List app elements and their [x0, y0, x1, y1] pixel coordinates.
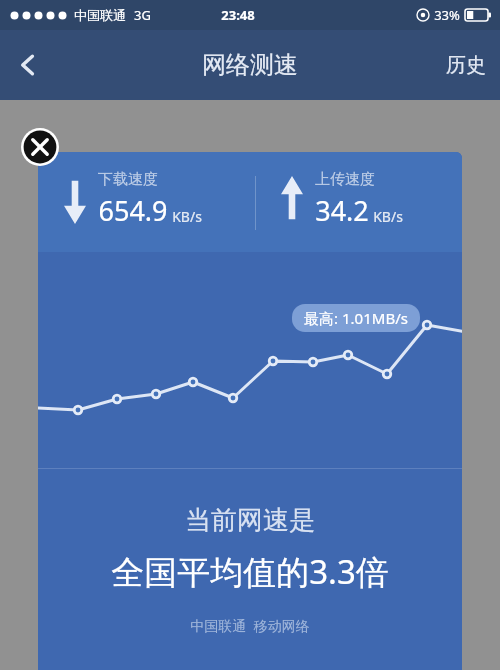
button[interactable]: Back: [0, 37, 56, 93]
staticText: 历史: [446, 53, 486, 78]
staticText: 网络测速: [202, 50, 298, 80]
staticText: 23:48: [221, 6, 255, 24]
staticText: 中国联通: [74, 7, 126, 23]
staticText: 最高: 1.01MB/s: [304, 308, 408, 328]
staticText: 33%: [434, 6, 460, 24]
staticText: 3G: [134, 6, 151, 24]
staticText: 中国联通 移动网络: [190, 616, 310, 635]
staticText: 654.9: [98, 192, 168, 229]
button[interactable]: 历史: [432, 43, 500, 88]
staticText: 上传速度: [315, 170, 375, 189]
staticText: 全国平均值的3.3倍: [111, 549, 389, 594]
staticText: 下载速度: [98, 170, 158, 189]
button[interactable]: Close: [21, 128, 59, 166]
staticText: KB/s: [172, 207, 202, 226]
staticText: KB/s: [373, 207, 403, 226]
staticText: 当前网速是: [185, 504, 315, 537]
staticText: 34.2: [315, 192, 369, 229]
